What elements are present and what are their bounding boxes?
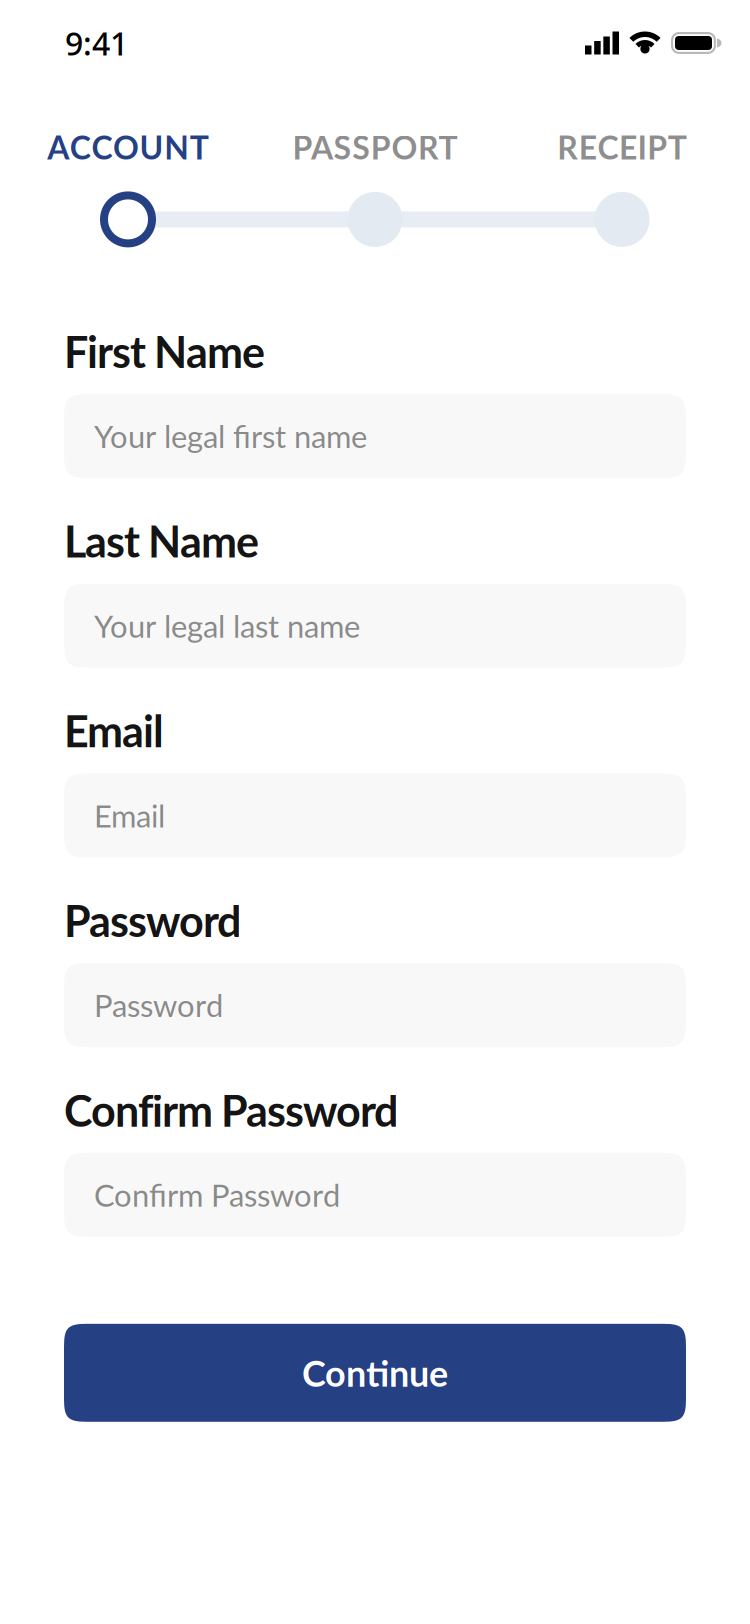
button[interactable]: PASSPORT: [256, 128, 494, 166]
staticText: Password: [64, 894, 241, 946]
button[interactable]: RECEIPT: [494, 128, 750, 166]
staticText: RECEIPT: [557, 128, 687, 166]
staticText: 9:41: [65, 22, 128, 64]
button[interactable]: Password: [64, 963, 686, 1047]
staticText: First Name: [64, 325, 265, 377]
staticText: Email: [94, 797, 165, 834]
staticText: Last Name: [64, 515, 259, 567]
staticText: Continue: [302, 1351, 448, 1394]
staticText: PASSPORT: [292, 128, 458, 166]
button[interactable]: Continue: [64, 1324, 686, 1422]
staticText: Email: [64, 705, 164, 756]
staticText: ACCOUNT: [47, 128, 209, 166]
staticText: Your legal last name: [94, 607, 360, 644]
button[interactable]: Your legal first name: [64, 394, 686, 478]
button[interactable]: ACCOUNT: [0, 128, 256, 166]
staticText: Confirm Password: [94, 1176, 340, 1213]
button[interactable]: Confirm Password: [64, 1153, 686, 1237]
button[interactable]: Your legal last name: [64, 584, 686, 668]
button[interactable]: Email: [64, 773, 686, 857]
staticText: Your legal first name: [94, 417, 367, 455]
staticText: Password: [94, 987, 223, 1024]
staticText: Confirm Password: [64, 1084, 398, 1136]
